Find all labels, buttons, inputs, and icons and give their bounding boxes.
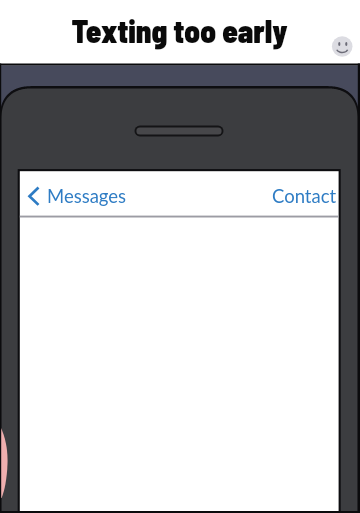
button[interactable]: Message thread [20, 218, 338, 513]
button[interactable] [26, 180, 130, 214]
button[interactable] [266, 180, 339, 214]
button[interactable]: React with a smile [330, 34, 355, 59]
